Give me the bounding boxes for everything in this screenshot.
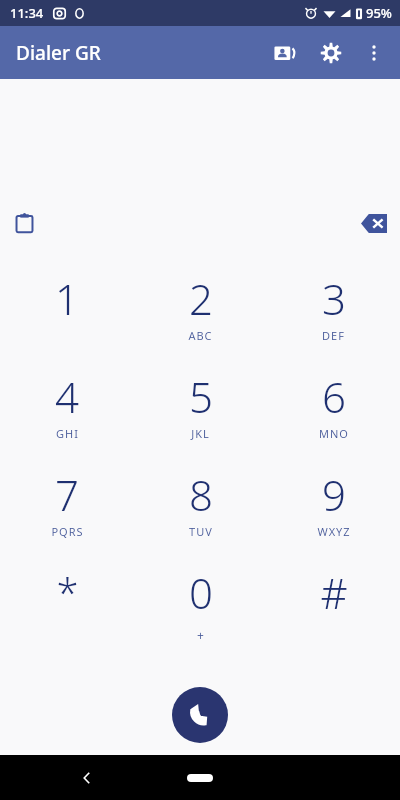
staticText: 8 bbox=[189, 466, 213, 523]
button[interactable]: Back bbox=[67, 758, 107, 798]
staticText: 11:34 bbox=[10, 4, 44, 22]
staticText: # bbox=[320, 564, 348, 621]
button[interactable]: 0 bbox=[134, 563, 267, 661]
button[interactable]: Call bbox=[172, 687, 228, 743]
staticText: Dialer GR bbox=[16, 40, 101, 66]
staticText: 4 bbox=[55, 368, 79, 425]
staticText: ABC bbox=[188, 328, 213, 343]
button[interactable]: 1 bbox=[0, 269, 134, 367]
staticText: 9 bbox=[322, 466, 346, 523]
button[interactable]: 2 bbox=[134, 269, 267, 367]
button[interactable]: 3 bbox=[267, 269, 400, 367]
button[interactable]: * bbox=[0, 563, 134, 661]
staticText: 2 bbox=[189, 270, 213, 327]
staticText: 0 bbox=[189, 564, 213, 621]
staticText: * bbox=[56, 565, 79, 619]
staticText: 3 bbox=[322, 270, 346, 327]
staticText: MNO bbox=[319, 426, 349, 441]
staticText: 1 bbox=[55, 270, 79, 327]
button[interactable]: 6 bbox=[267, 367, 400, 465]
button[interactable]: More options bbox=[354, 33, 394, 73]
button[interactable]: 8 bbox=[134, 465, 267, 563]
button[interactable]: Paste bbox=[2, 201, 46, 245]
staticText: TUV bbox=[189, 524, 213, 539]
staticText: JKL bbox=[191, 426, 210, 441]
button[interactable]: 9 bbox=[267, 465, 400, 563]
button[interactable]: # bbox=[267, 563, 400, 661]
staticText: 7 bbox=[55, 466, 79, 523]
button[interactable]: 4 bbox=[0, 367, 134, 465]
staticText: 95% bbox=[366, 4, 392, 22]
staticText: GHI bbox=[56, 426, 79, 441]
button[interactable]: Contacts bbox=[262, 30, 308, 76]
staticText: DEF bbox=[322, 328, 345, 343]
staticText: PQRS bbox=[51, 524, 84, 539]
button[interactable]: Home bbox=[174, 763, 226, 793]
staticText: 5 bbox=[189, 368, 213, 425]
staticText: WXYZ bbox=[317, 524, 351, 539]
button[interactable]: 5 bbox=[134, 367, 267, 465]
button[interactable]: 7 bbox=[0, 465, 134, 563]
button[interactable]: Settings bbox=[308, 30, 354, 76]
button[interactable]: Backspace bbox=[352, 201, 396, 245]
staticText: + bbox=[197, 627, 205, 643]
staticText: 6 bbox=[322, 368, 346, 425]
